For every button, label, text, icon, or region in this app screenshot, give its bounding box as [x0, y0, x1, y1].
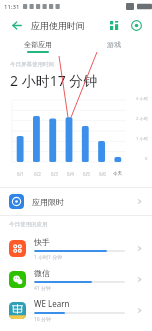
button[interactable]: WE Learn [0, 295, 152, 326]
button[interactable]: 微信 [0, 264, 152, 295]
staticText: 41 分钟 [34, 285, 52, 292]
staticText: 2 小时17 分钟 [10, 71, 98, 90]
button[interactable]: 游戏 [76, 37, 152, 56]
staticText: 快手 [34, 237, 50, 247]
staticText: 11:31 [4, 3, 20, 11]
button[interactable]: 全部应用 [0, 37, 76, 56]
staticText: 6/4 [67, 171, 74, 177]
staticText: 1 小时 [136, 136, 148, 142]
button[interactable]: 应用限时 [0, 188, 152, 215]
staticText: 16 分钟 [34, 316, 52, 323]
button[interactable]: 快手 [0, 233, 152, 264]
staticText: 今日使用的应用 [9, 221, 48, 228]
staticText: 6/6 [99, 171, 106, 177]
staticText: 微信 [34, 268, 50, 278]
staticText: 应用限时 [32, 197, 64, 207]
staticText: 1 小时1 分钟 [34, 254, 63, 261]
staticText: 6/1 [17, 171, 24, 177]
button[interactable]: 应用统计 [106, 17, 122, 33]
staticText: 2 小时 [136, 116, 148, 122]
staticText: 游戏 [107, 40, 121, 49]
staticText: 6/2 [34, 171, 41, 177]
staticText: 今天 [113, 171, 123, 177]
button[interactable]: 返回 [8, 17, 24, 33]
staticText: 应用使用时间 [31, 20, 85, 31]
staticText: 今日屏幕使用时间 [10, 61, 54, 68]
staticText: 6/5 [83, 171, 90, 177]
staticText: 0 [145, 156, 148, 162]
staticText: WE Learn [34, 298, 70, 309]
staticText: 3 小时 [136, 96, 148, 102]
staticText: 6/3 [51, 171, 58, 177]
button[interactable]: 设置 [128, 17, 144, 33]
staticText: 全部应用 [24, 40, 52, 49]
